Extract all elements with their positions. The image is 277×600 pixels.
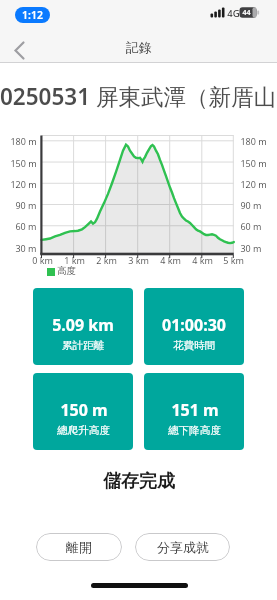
button[interactable]: 150 m: [33, 373, 133, 450]
staticText: 4 km: [192, 254, 213, 266]
staticText: 1:12: [22, 8, 43, 22]
staticText: 總爬升高度: [57, 424, 110, 437]
staticText: 01:00:30: [162, 314, 226, 336]
staticText: 30 m: [15, 242, 37, 254]
staticText: 90 m: [15, 199, 37, 211]
staticText: 1 km: [64, 254, 85, 266]
staticText: 120 m: [240, 178, 267, 190]
staticText: 180 m: [240, 135, 267, 147]
staticText: 4G: [227, 7, 239, 20]
staticText: 30 m: [240, 242, 262, 254]
staticText: 5.09 km: [52, 314, 114, 336]
staticText: 90 m: [240, 199, 262, 211]
staticText: 0250531 屏東武潭（新厝山: [0, 81, 276, 112]
staticText: 記錄: [126, 39, 152, 55]
staticText: 151 m: [171, 399, 219, 421]
staticText: 花費時間: [173, 339, 215, 352]
staticText: 高度: [57, 265, 76, 277]
button[interactable]: [6, 36, 32, 64]
staticText: 離開: [66, 539, 92, 555]
staticText: 44: [242, 8, 251, 18]
staticText: 150 m: [60, 399, 108, 421]
staticText: 4 km: [160, 254, 181, 266]
button[interactable]: 離開: [36, 533, 122, 561]
button[interactable]: 1:12: [15, 7, 50, 23]
staticText: 180 m: [10, 135, 37, 147]
staticText: 5 km: [223, 254, 244, 266]
staticText: 120 m: [10, 178, 37, 190]
staticText: 儲存完成: [103, 470, 175, 492]
staticText: 3 km: [128, 254, 149, 266]
button[interactable]: 分享成就: [135, 533, 230, 561]
staticText: 分享成就: [157, 539, 209, 555]
button[interactable]: 01:00:30: [144, 288, 244, 365]
staticText: 累計距離: [62, 339, 104, 352]
staticText: 2 km: [96, 254, 117, 266]
staticText: 60 m: [15, 220, 37, 232]
staticText: 總下降高度: [168, 424, 221, 437]
staticText: 150 m: [240, 157, 267, 169]
staticText: 60 m: [240, 220, 262, 232]
button[interactable]: 5.09 km: [33, 288, 133, 365]
staticText: 150 m: [10, 157, 37, 169]
button[interactable]: 151 m: [144, 373, 244, 450]
staticText: 0 km: [32, 254, 53, 266]
